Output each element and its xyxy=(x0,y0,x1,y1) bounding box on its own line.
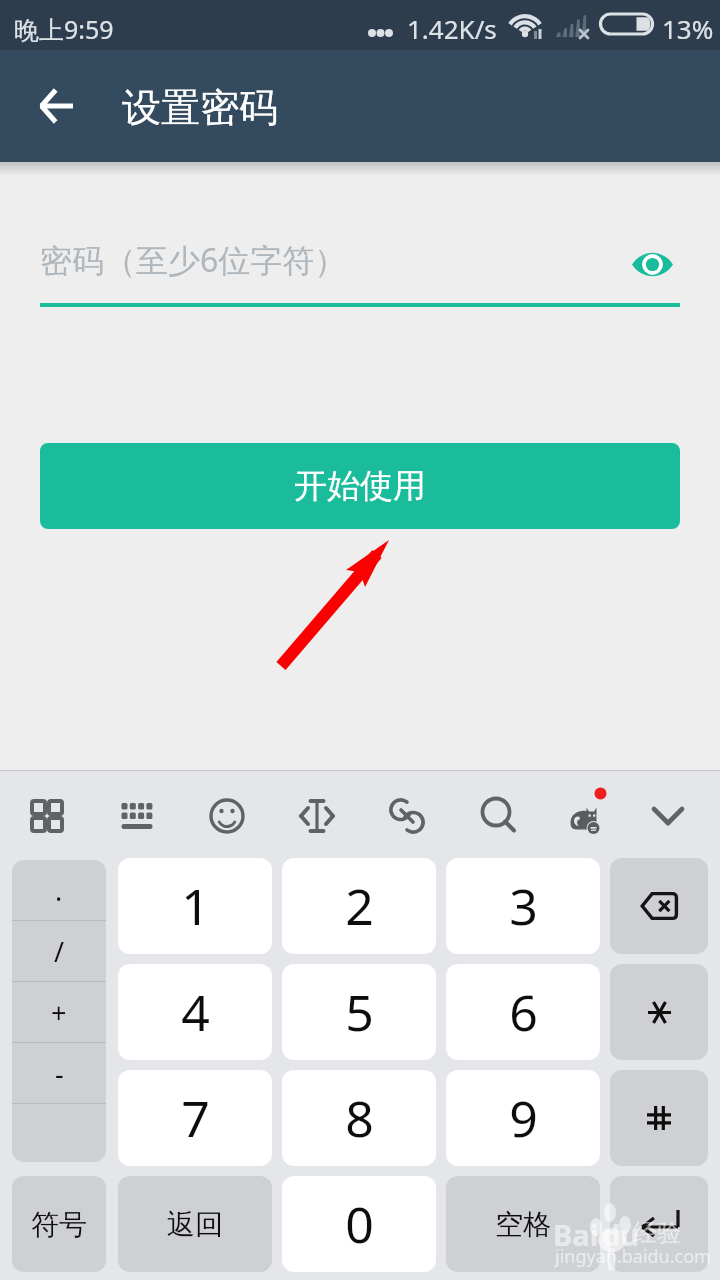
staticText: - xyxy=(55,1055,64,1092)
button[interactable]: 3 xyxy=(446,858,600,954)
button[interactable]: Enter xyxy=(610,1176,708,1272)
button[interactable]: Show password xyxy=(625,240,679,288)
button[interactable]: 符号 xyxy=(12,1176,106,1272)
button[interactable]: 8 xyxy=(282,1070,436,1166)
other: Enter xyxy=(638,1209,680,1239)
button[interactable]: 密码（至少6位字符） xyxy=(40,225,680,295)
button[interactable]: Clipboard xyxy=(362,772,452,860)
staticText: 5 xyxy=(345,978,374,1046)
button[interactable]: 5 xyxy=(282,964,436,1060)
button[interactable]: Backspace xyxy=(610,858,708,954)
staticText: + xyxy=(51,994,67,1031)
button[interactable]: 9 xyxy=(446,1070,600,1166)
button[interactable]: Theme xyxy=(539,772,629,860)
button[interactable] xyxy=(610,964,708,1060)
button[interactable]: - xyxy=(12,1043,106,1103)
button[interactable] xyxy=(610,1070,708,1166)
button[interactable]: 4 xyxy=(118,964,272,1060)
button[interactable]: 开始使用 xyxy=(40,443,680,529)
staticText: 6 xyxy=(509,978,538,1046)
button[interactable]: Search xyxy=(452,772,542,860)
button[interactable]: 6 xyxy=(446,964,600,1060)
staticText: 4 xyxy=(181,978,210,1046)
button[interactable]: + xyxy=(12,982,106,1042)
staticText: 2 xyxy=(345,872,374,940)
staticText: 0 xyxy=(345,1190,374,1258)
button[interactable]: Emoji xyxy=(182,772,272,860)
staticText: 设置密码 xyxy=(122,83,278,132)
staticText: 符号 xyxy=(31,1207,87,1242)
staticText: 晚上9:59 xyxy=(14,12,114,46)
button[interactable]: / xyxy=(12,921,106,981)
button[interactable]: 7 xyxy=(118,1070,272,1166)
staticText: 空格 xyxy=(495,1207,551,1242)
button[interactable]: . xyxy=(12,860,106,920)
staticText: 开始使用 xyxy=(294,465,426,507)
button[interactable]: Text editing xyxy=(272,772,362,860)
button[interactable]: Keyboard layout xyxy=(92,772,182,860)
staticText: 3 xyxy=(509,872,538,940)
button[interactable]: 2 xyxy=(282,858,436,954)
button[interactable]: 空格 xyxy=(446,1176,600,1272)
button[interactable]: Hide keyboard xyxy=(623,772,713,860)
staticText: 1 xyxy=(181,872,210,940)
staticText: 经验 xyxy=(633,1218,681,1248)
staticText: / xyxy=(54,933,65,970)
button[interactable]: 0 xyxy=(282,1176,436,1272)
button[interactable]: 返回 xyxy=(118,1176,272,1272)
button[interactable]: 1 xyxy=(118,858,272,954)
staticText: 密码（至少6位字符） xyxy=(40,238,347,282)
staticText: 9 xyxy=(509,1084,538,1152)
staticText: du xyxy=(602,1215,640,1254)
staticText: 13% xyxy=(662,11,714,46)
other: Backspace xyxy=(640,892,678,920)
staticText: 8 xyxy=(345,1084,374,1152)
button[interactable]: Apps xyxy=(2,772,92,860)
button[interactable]: Back xyxy=(28,78,84,134)
staticText: . xyxy=(55,872,63,909)
staticText: jingyan.baidu.com xyxy=(555,1244,711,1269)
staticText: Bai xyxy=(553,1215,599,1254)
staticText: 7 xyxy=(181,1084,210,1152)
staticText: 1.42K/s xyxy=(407,11,497,46)
staticText: 返回 xyxy=(167,1207,223,1242)
